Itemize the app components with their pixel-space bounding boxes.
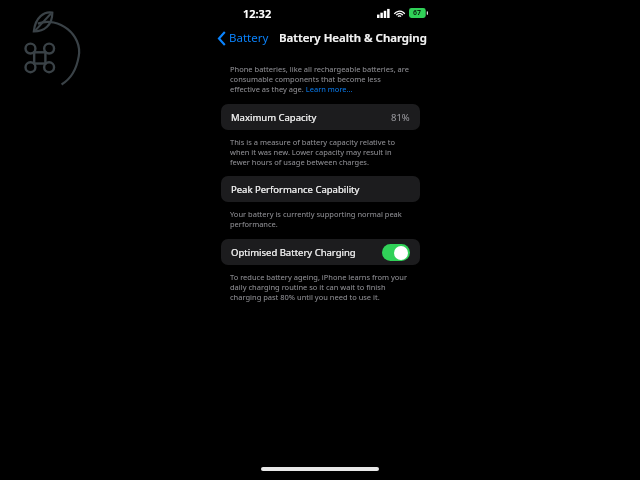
staticText: 81% <box>391 111 410 124</box>
button[interactable]: Optimised Battery Charging <box>221 239 420 265</box>
staticText: 12:32 <box>243 6 272 21</box>
staticText: Peak Performance Capability <box>231 183 360 196</box>
staticText: Your battery is currently supporting nor… <box>230 209 411 229</box>
button[interactable]: Battery <box>216 28 271 48</box>
button[interactable]: Optimised Battery Charging toggle, on <box>382 244 410 261</box>
staticText: To reduce battery ageing, iPhone learns … <box>230 272 411 302</box>
staticText: Maximum Capacity <box>231 111 317 124</box>
staticText: Battery <box>229 30 269 46</box>
staticText: This is a measure of battery capacity re… <box>230 137 411 167</box>
staticText: Battery Health & Charging <box>279 30 427 46</box>
staticText: 67 <box>413 8 422 18</box>
staticText: Phone batteries, like all rechargeable b… <box>230 64 411 94</box>
button[interactable]: Peak Performance Capability <box>221 176 420 202</box>
staticText: Optimised Battery Charging <box>231 246 356 259</box>
button[interactable]: Maximum Capacity <box>221 104 420 130</box>
